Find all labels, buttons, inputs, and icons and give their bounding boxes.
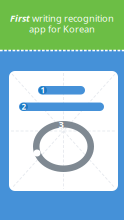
staticText: 3: [58, 118, 63, 131]
staticText: 1: [40, 85, 45, 95]
staticText: First: [10, 12, 30, 24]
staticText: app for Korean: [29, 23, 95, 35]
staticText: 2: [21, 101, 26, 112]
staticText: writing recognition: [30, 12, 114, 24]
